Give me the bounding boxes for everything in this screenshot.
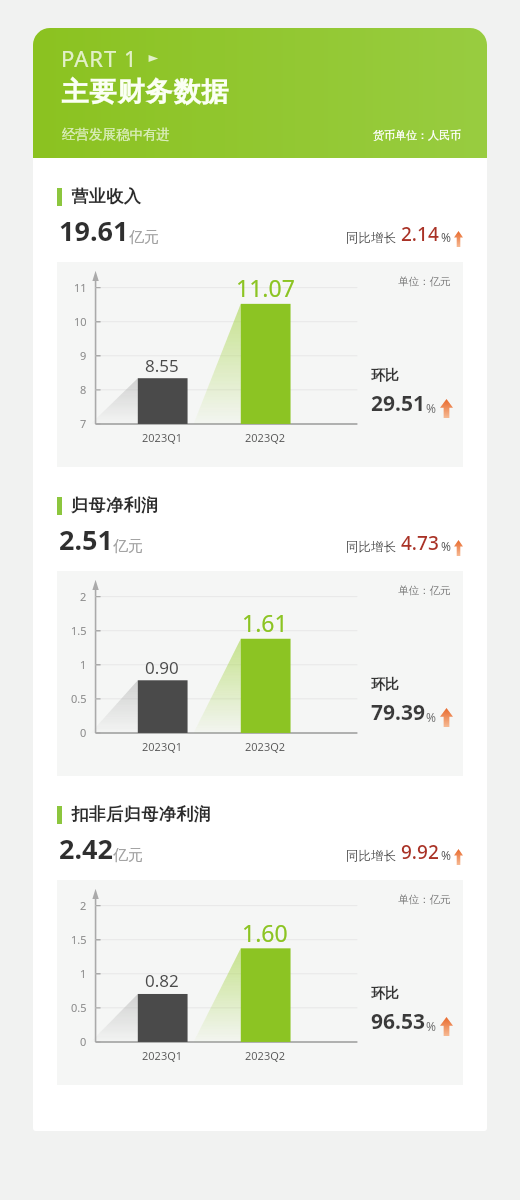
staticText: 亿元 [129,228,159,247]
staticText: 0 [80,1034,87,1049]
button[interactable]: 环比 [371,985,453,1036]
staticText: 1 [80,966,87,981]
button[interactable]: 归母净利润 [57,495,159,516]
other: Increase [440,708,453,727]
staticText: 经营发展稳中有进 [62,126,170,143]
staticText: 9 [80,348,87,363]
staticText: 2023Q1 [142,1048,183,1063]
staticText: 货币单位：人民币 [373,128,461,142]
staticText: % [441,847,451,863]
staticText: 环比 [371,676,399,694]
staticText: 2.14 [401,221,439,247]
staticText: % [441,538,451,554]
staticText: 2.51 [59,521,113,558]
staticText: 0.82 [145,969,179,992]
staticText: 10 [74,314,87,329]
staticText: 同比增长 [346,848,396,864]
button[interactable]: 单位：亿元 [57,571,463,776]
staticText: 营业收入 [71,186,141,207]
staticText: 单位：亿元 [398,275,451,288]
other: Increase [454,540,463,556]
staticText: 2023Q2 [245,1048,286,1063]
staticText: 单位：亿元 [398,893,451,906]
staticText: 亿元 [113,846,143,865]
staticText: 8 [80,382,87,397]
staticText: % [426,400,436,416]
staticText: 2023Q1 [142,430,183,445]
staticText: 0.5 [71,691,87,706]
other: Increase [440,399,453,418]
staticText: 2023Q2 [245,430,286,445]
button[interactable]: 环比 [371,367,453,418]
staticText: 11.07 [236,272,295,303]
staticText: 0.90 [145,656,179,679]
button[interactable]: 同比增长 [346,839,463,865]
button[interactable]: 环比 [371,676,453,727]
staticText: 2 [80,589,87,604]
button[interactable]: 同比增长 [346,530,463,556]
staticText: 9.92 [401,839,439,865]
staticText: 单位：亿元 [398,584,451,597]
staticText: 扣非后归母净利润 [71,804,211,825]
staticText: 79.39 [371,698,425,727]
staticText: PART 1 [61,43,138,73]
staticText: 1.5 [71,623,87,638]
staticText: 8.55 [145,354,179,377]
button[interactable]: 营业收入 [57,186,141,207]
staticText: 1 [80,657,87,672]
other: Increase [440,1017,453,1036]
staticText: 96.53 [371,1007,425,1036]
button[interactable]: 同比增长 [346,221,463,247]
staticText: % [426,709,436,725]
staticText: 亿元 [113,537,143,556]
staticText: 1.60 [242,917,288,948]
staticText: 2023Q1 [142,739,183,754]
staticText: 11 [74,280,87,295]
staticText: 2023Q2 [245,739,286,754]
staticText: 1.5 [71,932,87,947]
staticText: 2 [80,898,87,913]
staticText: 7 [80,416,87,431]
other: Increase [454,849,463,865]
staticText: 归母净利润 [71,495,159,516]
staticText: 同比增长 [346,539,396,555]
staticText: 主要财务数据 [61,75,229,109]
staticText: 同比增长 [346,230,396,246]
staticText: 0.5 [71,1000,87,1015]
staticText: 19.61 [59,212,129,249]
button[interactable]: 单位：亿元 [57,262,463,467]
staticText: 2.42 [59,830,113,867]
button[interactable]: 扣非后归母净利润 [57,804,211,825]
staticText: % [426,1018,436,1034]
staticText: 环比 [371,367,399,385]
staticText: 1.61 [242,607,288,638]
button[interactable]: 单位：亿元 [57,880,463,1085]
staticText: 环比 [371,985,399,1003]
staticText: 29.51 [371,389,425,418]
staticText: % [441,229,451,245]
other: Increase [454,231,463,247]
staticText: 4.73 [401,530,439,556]
staticText: 0 [80,725,87,740]
button[interactable]: PART 1 [33,28,487,158]
